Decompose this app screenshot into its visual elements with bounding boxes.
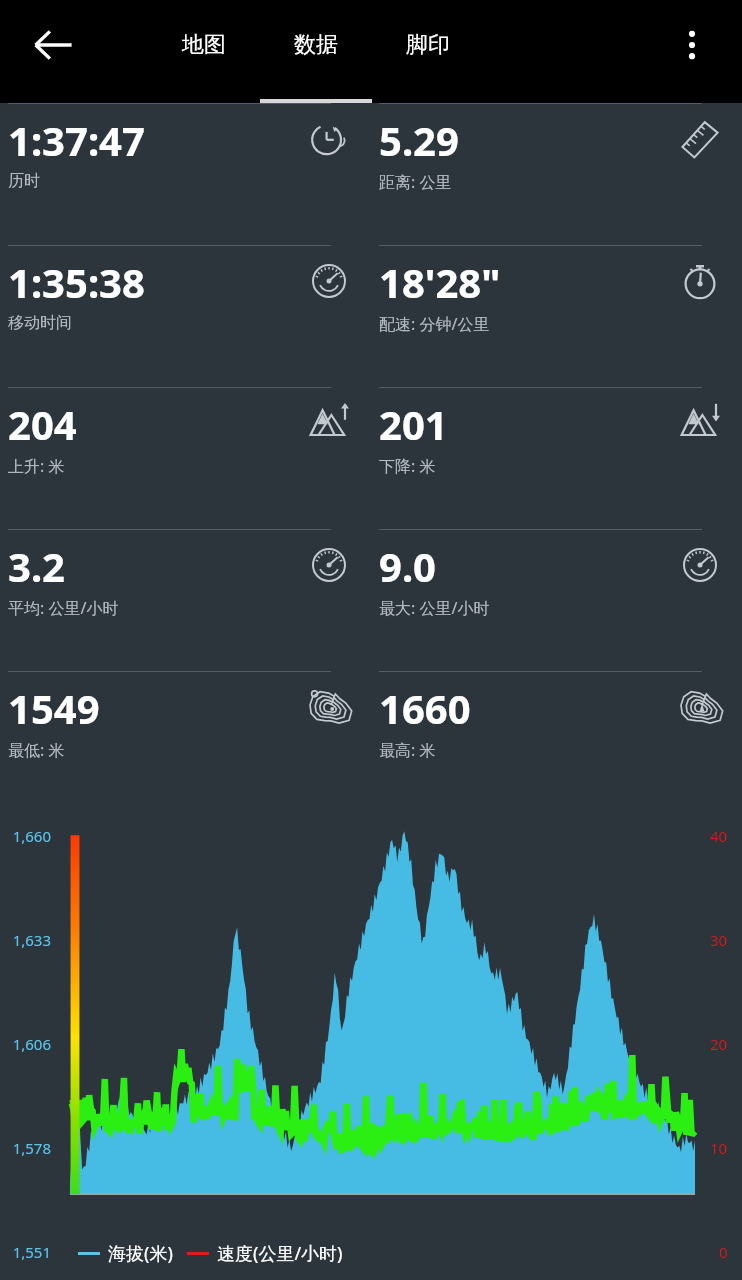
button[interactable]: 脚印 bbox=[372, 9, 484, 81]
staticText: 速度(公里/小时) bbox=[217, 1241, 343, 1266]
staticText: 地图 bbox=[182, 31, 226, 59]
button[interactable]: 1549 bbox=[0, 671, 371, 813]
staticText: 5.29 bbox=[379, 113, 459, 167]
button[interactable]: 1660 bbox=[371, 671, 742, 813]
staticText: 移动时间 bbox=[8, 313, 72, 333]
staticText: 最高: 米 bbox=[379, 739, 436, 761]
button[interactable]: 9.0 bbox=[371, 529, 742, 671]
staticText: 10 bbox=[710, 1138, 728, 1158]
staticText: 20 bbox=[710, 1034, 728, 1054]
staticText: 最低: 米 bbox=[8, 739, 65, 761]
staticText: 1,551 bbox=[12, 1242, 51, 1262]
button[interactable]: 1:35:38 bbox=[0, 245, 371, 387]
button[interactable]: Back bbox=[22, 14, 84, 76]
staticText: 脚印 bbox=[406, 31, 450, 59]
staticText: 1660 bbox=[379, 681, 471, 735]
staticText: 历时 bbox=[8, 171, 40, 191]
staticText: 1,660 bbox=[12, 826, 51, 846]
staticText: 9.0 bbox=[379, 539, 436, 593]
staticText: 下降: 米 bbox=[379, 455, 436, 477]
staticText: 配速: 分钟/公里 bbox=[379, 313, 490, 335]
button[interactable]: 数据 bbox=[260, 9, 372, 81]
button[interactable]: 3.2 bbox=[0, 529, 371, 671]
staticText: 1,578 bbox=[12, 1138, 51, 1158]
staticText: 平均: 公里/小时 bbox=[8, 597, 119, 619]
button[interactable]: 1:37:47 bbox=[0, 103, 371, 245]
staticText: 1:35:38 bbox=[8, 255, 145, 309]
staticText: 1,633 bbox=[12, 930, 51, 950]
button[interactable]: 204 bbox=[0, 387, 371, 529]
button[interactable]: 201 bbox=[371, 387, 742, 529]
staticText: 上升: 米 bbox=[8, 455, 65, 477]
staticText: 201 bbox=[379, 397, 448, 451]
staticText: 1549 bbox=[8, 681, 100, 735]
button[interactable]: 地图 bbox=[148, 9, 260, 81]
button[interactable]: 18'28" bbox=[371, 245, 742, 387]
staticText: 1,606 bbox=[12, 1034, 51, 1054]
staticText: 1:37:47 bbox=[8, 113, 145, 167]
staticText: 数据 bbox=[294, 31, 338, 59]
staticText: 40 bbox=[710, 826, 728, 846]
staticText: 最大: 公里/小时 bbox=[379, 597, 490, 619]
staticText: 海拔(米) bbox=[108, 1241, 173, 1266]
staticText: 距离: 公里 bbox=[379, 171, 452, 193]
staticText: 3.2 bbox=[8, 539, 65, 593]
button[interactable]: 5.29 bbox=[371, 103, 742, 245]
button[interactable]: More options bbox=[664, 17, 720, 73]
staticText: 204 bbox=[8, 397, 77, 451]
staticText: 30 bbox=[710, 930, 728, 950]
staticText: 18'28" bbox=[379, 255, 501, 309]
staticText: 0 bbox=[719, 1242, 728, 1262]
